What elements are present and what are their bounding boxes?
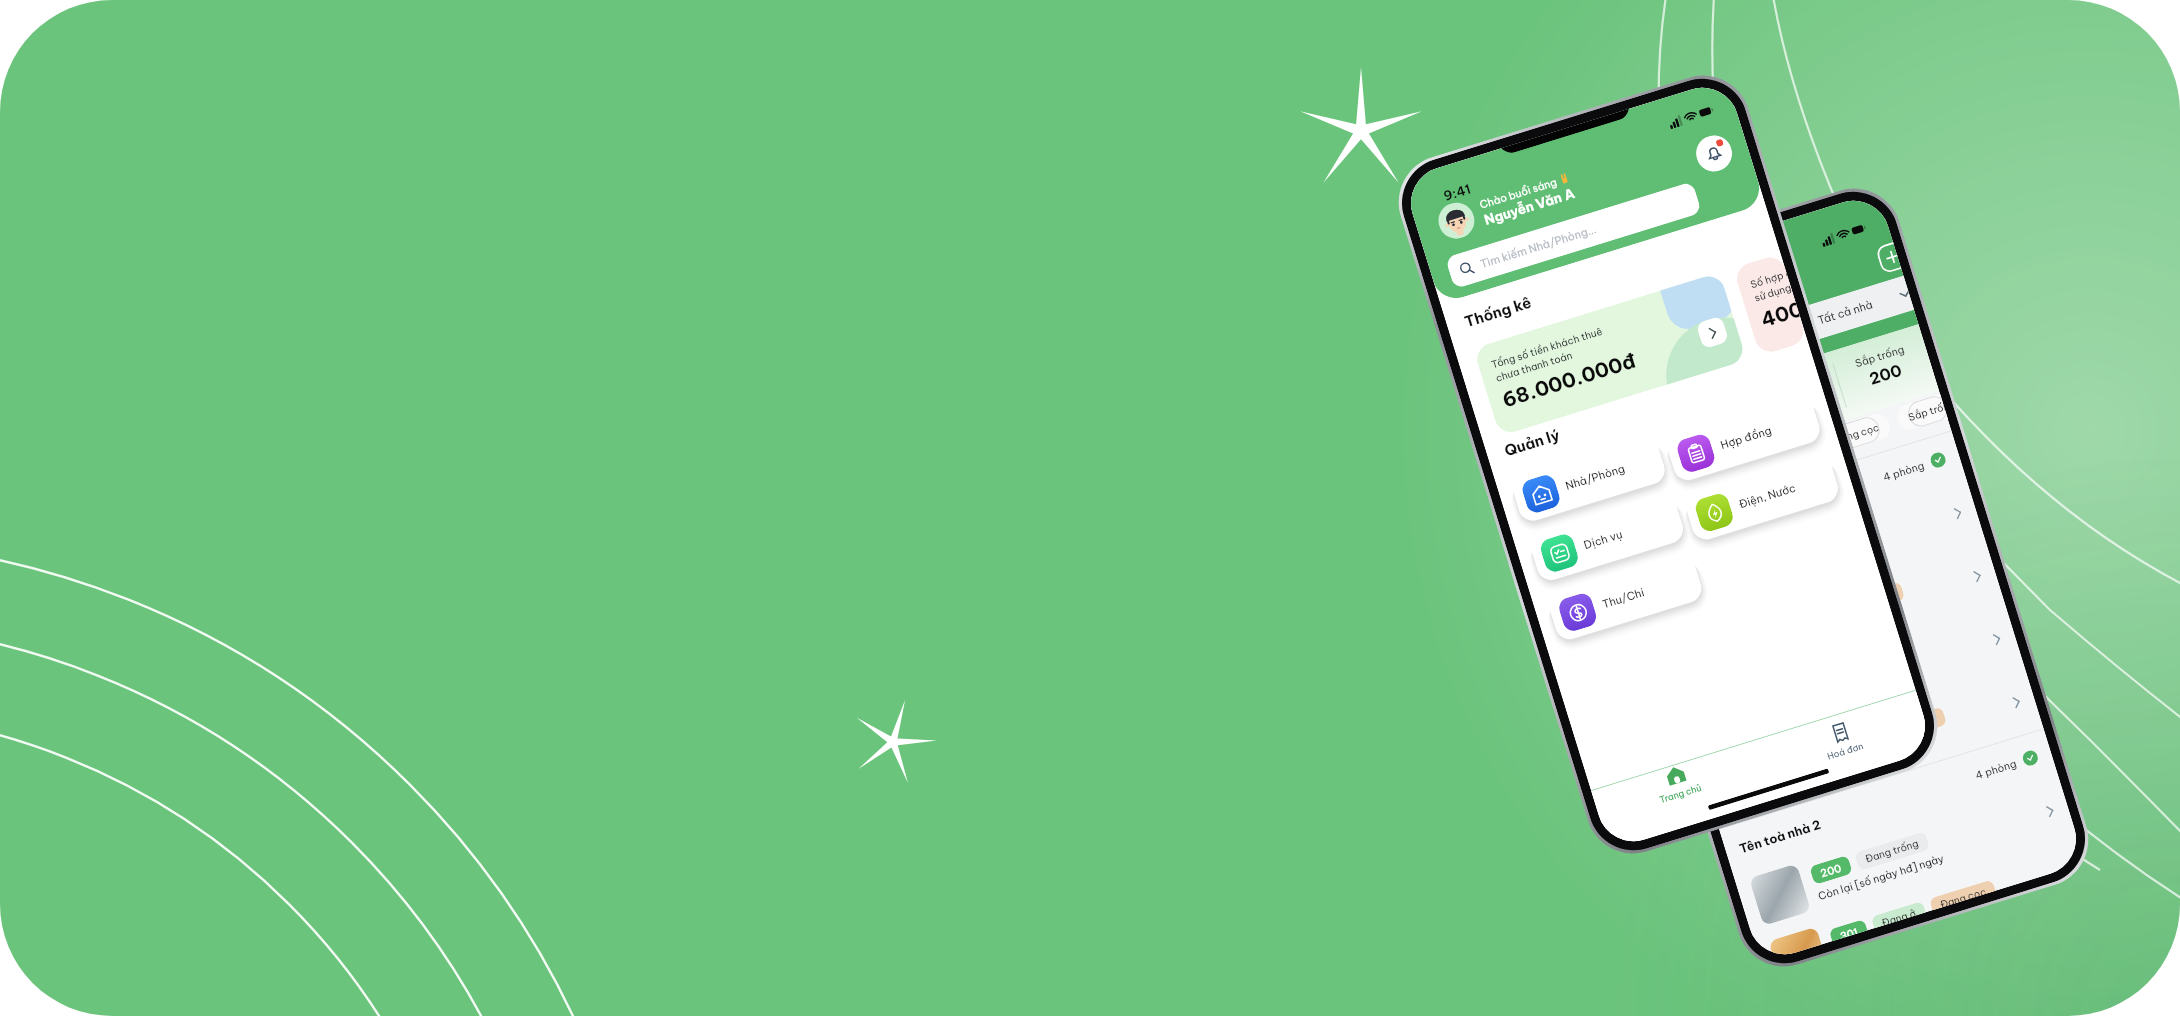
staticText: 4 phòng xyxy=(1973,756,2018,781)
button[interactable]: Tổng số tiền khách thuê chưa thanh toán xyxy=(1473,272,1747,436)
button[interactable]: Hết hạn xyxy=(1753,434,1818,477)
staticText: Sắp trống xyxy=(1907,401,1946,424)
staticText: Đang cọc xyxy=(1831,421,1881,447)
button[interactable]: Tất cả xyxy=(1629,474,1688,515)
staticText: Tìm kiếm Nhà/Phòng... xyxy=(1478,222,1598,271)
staticText: 9:41 xyxy=(1441,180,1473,204)
staticText: Hoá đơn xyxy=(1826,740,1865,762)
staticText: 150 xyxy=(1705,411,1740,439)
staticText: Hết hạn xyxy=(1765,444,1806,468)
button[interactable]: 503 xyxy=(1699,665,2044,829)
staticText: 301 xyxy=(1838,924,1859,939)
button[interactable]: Sắp trống xyxy=(1894,394,1948,433)
staticText: Tên toà nhà 1 xyxy=(1645,519,1728,558)
staticText: Đang ở xyxy=(1701,464,1740,488)
staticText: Hợp đồng xyxy=(1719,423,1773,452)
button[interactable]: Hợp đồng xyxy=(1664,393,1823,484)
staticText: Còn lại [số ngày hđ] ngày xyxy=(1816,851,1945,902)
button[interactable]: Tìm kiếm Nhà/Phòng... xyxy=(1445,181,1702,289)
staticText: 4 phòng xyxy=(1881,458,1926,483)
staticText: Nguyễn Văn A xyxy=(1482,184,1577,228)
staticText: Điện, Nước xyxy=(1737,481,1797,511)
staticText: Tất cả xyxy=(1641,484,1676,506)
button[interactable]: Thông báo xyxy=(1692,131,1737,176)
button[interactable]: 301 xyxy=(1660,539,2005,703)
button[interactable]: Đang cọc xyxy=(1819,411,1893,456)
staticText: Đang trống xyxy=(1863,837,1921,866)
staticText: Đang ở xyxy=(1830,734,1868,757)
button[interactable]: Sắp trống xyxy=(1833,336,1933,398)
staticText: Còn lại [số ngày hđ] ngày xyxy=(1763,679,1892,730)
staticText: Tất cả nhà xyxy=(1816,297,1875,327)
staticText: Chào buổi sáng xyxy=(1478,175,1558,211)
button[interactable]: Xem chi tiết thống kê xyxy=(1696,316,1729,349)
staticText: Đang cọc xyxy=(1846,587,1896,613)
button[interactable]: Thêm nhà xyxy=(1875,242,1901,274)
button[interactable]: Điện, Nước xyxy=(1682,452,1842,543)
staticText: Dịch vụ xyxy=(1582,527,1624,552)
staticText: Thu/Chi xyxy=(1600,585,1647,611)
button[interactable]: Dịch vụ xyxy=(1527,493,1687,584)
staticText: Tên toà nhà 2 xyxy=(1737,816,1823,856)
staticText: Nhà/Phòng xyxy=(1587,309,1675,353)
staticText: Trang chủ xyxy=(1658,782,1703,805)
staticText: Nhà/Phòng xyxy=(1564,461,1627,493)
staticText: Số hợp đồng sử dụng xyxy=(1749,268,1793,305)
button[interactable]: 200 xyxy=(1641,476,1985,640)
button[interactable]: Số hợp đồng sử dụng xyxy=(1733,253,1808,356)
button[interactable]: 402 xyxy=(1680,602,2024,766)
staticText: 200 xyxy=(1819,861,1843,879)
staticText: Còn lại [số ngày hđ] ngày xyxy=(1782,742,1911,793)
staticText: Sắp trống xyxy=(1853,342,1906,369)
staticText: Quản lý xyxy=(1502,425,1562,460)
button[interactable]: Hoá đơn xyxy=(1754,691,1934,798)
staticText: 400 xyxy=(1758,297,1802,332)
staticText: Đang ở xyxy=(1880,906,1917,926)
button[interactable]: 200 xyxy=(1733,774,2077,938)
staticText: 200 xyxy=(1867,360,1905,389)
button[interactable]: Trang chủ xyxy=(1591,741,1771,849)
button[interactable]: Đang ở xyxy=(1597,363,1843,471)
staticText: Tổng số tiền khách thuê chưa thanh toán xyxy=(1490,325,1609,385)
staticText: Đang cọc xyxy=(1888,712,1938,739)
staticText: Thống kê xyxy=(1462,293,1533,331)
staticText: 68.000.000đ xyxy=(1499,347,1639,412)
button[interactable]: Nhà/Phòng xyxy=(1509,434,1668,524)
button[interactable]: Thu/Chi xyxy=(1546,552,1705,643)
staticText: Đang cọc xyxy=(1938,885,1987,908)
button[interactable]: Đang ở xyxy=(1689,455,1752,497)
button[interactable]: Tất cả nhà xyxy=(1596,275,1914,405)
button[interactable]: 301 xyxy=(1753,837,2085,963)
